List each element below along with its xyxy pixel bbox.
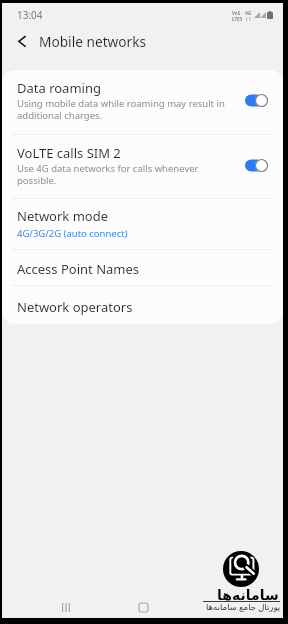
staticText: Network mode xyxy=(17,207,109,225)
staticText: 4G/3G/2G (auto connect) xyxy=(17,227,128,240)
button[interactable]: Home xyxy=(129,597,158,618)
staticText: سامانه‌ها xyxy=(217,587,279,603)
staticText: Network operators xyxy=(17,298,133,316)
button[interactable]: Toggle on xyxy=(245,159,268,172)
staticText: Access Point Names xyxy=(17,260,140,278)
staticText: VoLTE calls SIM 2 xyxy=(17,144,121,162)
button[interactable]: Data roaming xyxy=(2,70,283,134)
button[interactable]: Toggle on xyxy=(245,94,268,107)
staticText: Using mobile data while roaming may resu… xyxy=(17,97,225,122)
button[interactable]: Network mode xyxy=(2,199,283,249)
button[interactable]: Back xyxy=(158,597,283,618)
staticText: Use 4G data networks for calls whenever … xyxy=(17,162,199,187)
button[interactable]: Navigate up xyxy=(8,28,36,58)
staticText: Data roaming xyxy=(17,79,101,97)
button[interactable]: Recent apps xyxy=(2,597,129,618)
staticText: LTE3 xyxy=(232,16,243,22)
button[interactable]: Network operators xyxy=(2,286,283,324)
staticText: 4G xyxy=(245,10,252,17)
button[interactable]: VoLTE calls SIM 2 xyxy=(2,135,283,198)
button[interactable]: Access Point Names xyxy=(2,250,283,285)
staticText: پورتال جامع سامانه‌ها xyxy=(206,601,281,613)
staticText: VoS xyxy=(232,10,241,16)
staticText: 13:04 xyxy=(17,8,43,22)
staticText: Mobile networks xyxy=(39,32,147,51)
